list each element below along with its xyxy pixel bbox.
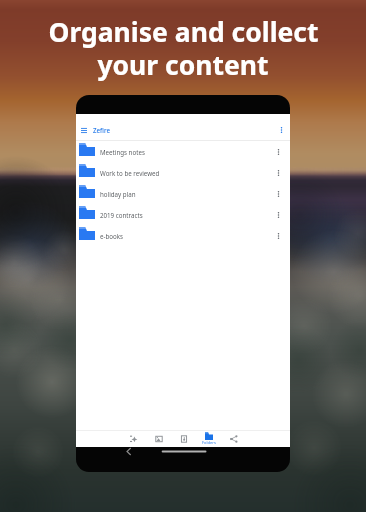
- button[interactable]: 2019 contracts: [76, 204, 290, 225]
- button[interactable]: Folder options: [272, 230, 284, 242]
- button[interactable]: Open navigation menu: [78, 124, 90, 136]
- button[interactable]: Folder options: [272, 146, 284, 158]
- button[interactable]: Folder options: [272, 188, 284, 200]
- staticText: Organise and collect: [48, 14, 319, 50]
- staticText: your content: [97, 47, 269, 83]
- staticText: holiday plan: [100, 190, 136, 198]
- button[interactable]: More options: [275, 124, 287, 136]
- staticText: Zefire: [93, 126, 111, 134]
- button[interactable]: Folder options: [272, 209, 284, 221]
- button[interactable]: e-books: [76, 225, 290, 246]
- button[interactable]: Folder options: [272, 167, 284, 179]
- staticText: Meetings notes: [100, 148, 145, 156]
- button[interactable]: Folders: [196, 431, 221, 447]
- button[interactable]: Documents: [171, 431, 196, 447]
- staticText: Work to be reviewed: [100, 169, 160, 177]
- staticText: 2019 contracts: [100, 211, 143, 219]
- button[interactable]: holiday plan: [76, 183, 290, 204]
- button[interactable]: Shared: [221, 431, 246, 447]
- button[interactable]: Magic: [121, 431, 146, 447]
- staticText: e-books: [100, 232, 124, 240]
- button[interactable]: Meetings notes: [76, 141, 290, 162]
- button[interactable]: Work to be reviewed: [76, 162, 290, 183]
- button[interactable]: Photos: [146, 431, 171, 447]
- staticText: Folders: [202, 440, 216, 445]
